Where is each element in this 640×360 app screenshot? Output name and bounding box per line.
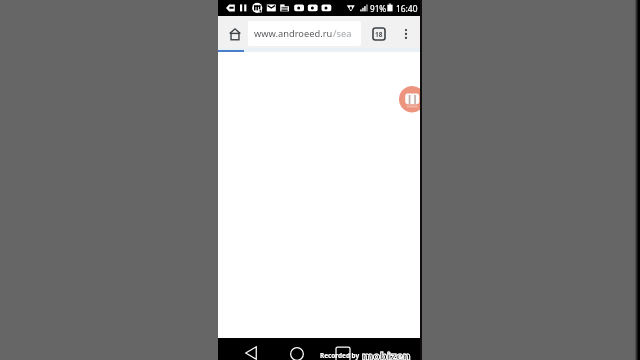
staticText: 16:40: [396, 3, 418, 14]
button[interactable]: www.androeed.ru: [248, 21, 361, 46]
staticText: www.androeed.ru: [254, 27, 333, 40]
staticText: 91%: [370, 3, 387, 14]
staticText: mobizen: [362, 348, 411, 360]
button[interactable]: Home: [284, 343, 310, 360]
button[interactable]: Home: [223, 22, 247, 46]
staticText: 18: [375, 30, 383, 39]
button[interactable]: Back: [238, 342, 264, 360]
staticText: /sea: [333, 27, 352, 40]
button[interactable]: Tabs: [367, 22, 391, 46]
button[interactable]: Recent apps: [330, 343, 356, 360]
staticText: Recorded by: [320, 351, 360, 360]
button[interactable]: More options: [394, 22, 418, 46]
